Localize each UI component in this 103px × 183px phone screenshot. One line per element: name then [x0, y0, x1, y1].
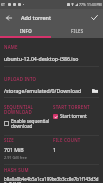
staticText: INFO	[20, 28, 32, 34]
staticText: 77%	[79, 2, 86, 7]
button[interactable]: Done	[86, 9, 103, 26]
staticText: KT	[1, 2, 5, 7]
staticText: 701 MiB	[4, 146, 24, 153]
staticText: Enable sequential download	[11, 118, 50, 129]
button[interactable]: Start torrent	[53, 113, 87, 119]
staticText: UPLOAD INTO	[4, 76, 37, 82]
button[interactable]: Choose folder	[90, 86, 99, 95]
staticText: 1	[53, 146, 56, 153]
staticText: Start torrent	[60, 113, 87, 119]
button[interactable]: Enable sequential download	[4, 118, 50, 129]
staticText: Add torrent	[21, 14, 51, 21]
staticText: NAME	[4, 44, 18, 50]
button[interactable]: INFO	[0, 26, 51, 36]
staticText: FILES	[71, 28, 84, 34]
staticText: SEQUENTIAL DOWNLOAD	[4, 104, 34, 115]
staticText: START TORRENT	[53, 104, 90, 110]
button[interactable]: FILES	[51, 26, 103, 36]
button[interactable]: Navigate up	[0, 9, 17, 26]
staticText: HASH SUM	[4, 167, 29, 173]
staticText: FILE COUNT	[53, 137, 81, 143]
staticText: 2.91 GiB free	[4, 155, 27, 160]
staticText: 11:33 PM	[87, 2, 102, 7]
staticText: /storage/emulated/0/Download	[4, 87, 90, 94]
staticText: b8a0a0b4e4b5a1ca199be3b3cc8e7b1f143d3d0e…	[4, 176, 99, 183]
staticText: SIZE	[4, 137, 14, 143]
staticText: ubuntu-12.04-desktop-i386.iso	[4, 55, 79, 62]
